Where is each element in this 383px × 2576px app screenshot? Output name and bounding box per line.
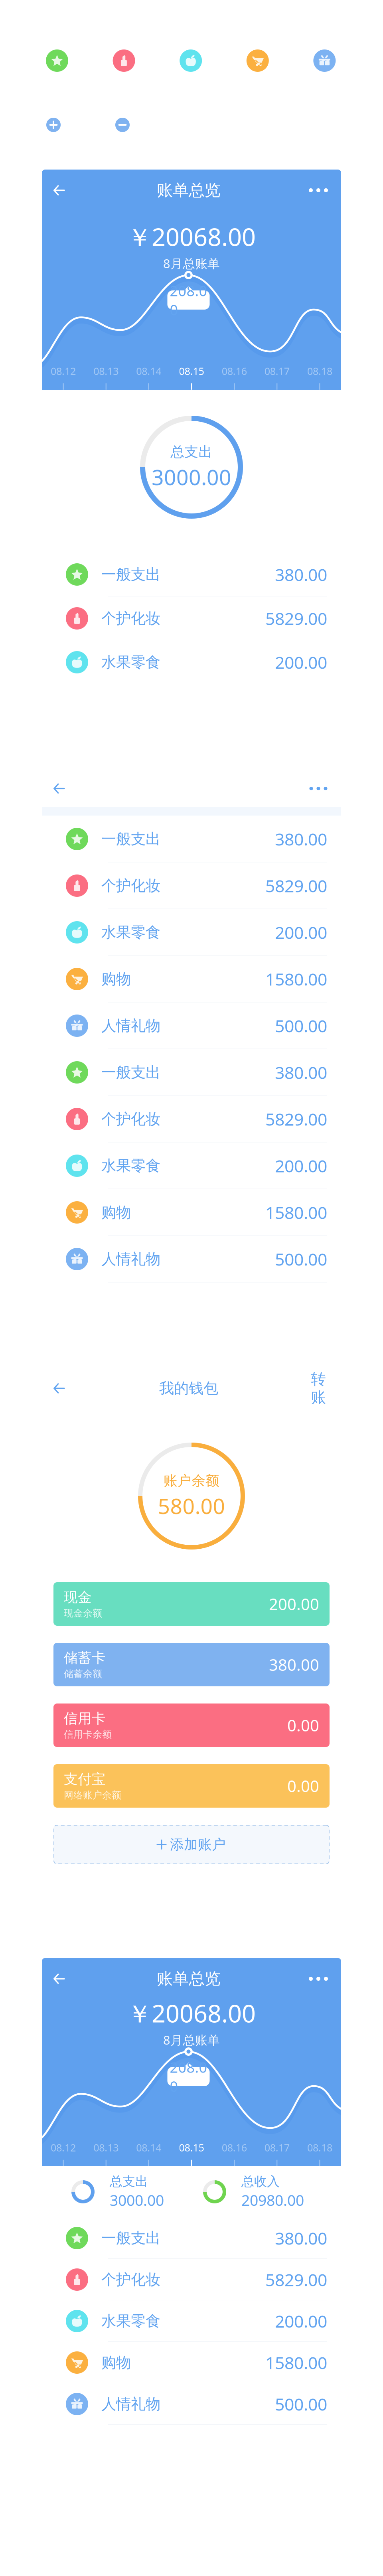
button[interactable]: 个护化妆 xyxy=(42,1096,341,1142)
staticText: 5829.00 xyxy=(265,874,327,897)
staticText: 信用卡 xyxy=(64,1710,106,1727)
button[interactable]: Back xyxy=(46,1376,72,1400)
staticText: 个护化妆 xyxy=(101,2270,160,2289)
staticText: 现金余额 xyxy=(64,1607,102,1619)
button[interactable]: 水果零食 xyxy=(42,640,341,684)
staticText: 个护化妆 xyxy=(101,609,160,628)
staticText: 储蓄卡 xyxy=(64,1649,106,1666)
staticText: 380.00 xyxy=(269,1654,319,1675)
button[interactable]: More xyxy=(305,1967,332,1991)
button[interactable]: 人情礼物 xyxy=(42,1236,341,1282)
staticText: 200.00 xyxy=(275,921,327,944)
staticText: 380.00 xyxy=(275,828,327,850)
button[interactable]: 水果零食 xyxy=(42,2300,341,2342)
button[interactable]: 信用卡 xyxy=(53,1704,330,1747)
button[interactable]: 一般支出 xyxy=(42,1049,341,1096)
staticText: 支付宝 xyxy=(64,1771,106,1788)
staticText: 添加账户 xyxy=(170,1836,226,1853)
staticText: 储蓄余额 xyxy=(64,1668,102,1680)
button[interactable]: 一般支出 xyxy=(42,2217,341,2259)
staticText: 总支出 xyxy=(171,443,212,460)
button[interactable]: 个护化妆 xyxy=(42,596,341,640)
button[interactable]: 添加账户 xyxy=(53,1825,330,1864)
staticText: 08.13 xyxy=(93,364,119,378)
button[interactable]: 个护化妆 xyxy=(42,862,341,909)
staticText: 580.00 xyxy=(158,1492,225,1520)
staticText: 1580.00 xyxy=(265,968,327,990)
button[interactable]: 现金 xyxy=(53,1582,330,1626)
staticText: 380.00 xyxy=(275,2227,327,2249)
staticText: 人情礼物 xyxy=(101,1250,160,1268)
button[interactable]: 个护化妆 xyxy=(42,2259,341,2300)
staticText: 现金 xyxy=(64,1589,92,1606)
staticText: 1580.00 xyxy=(265,1201,327,1224)
button[interactable]: 储蓄卡 xyxy=(53,1643,330,1686)
staticText: 208.00 xyxy=(170,281,207,319)
staticText: 08.15 xyxy=(179,364,204,378)
staticText: 200.00 xyxy=(269,1593,319,1615)
staticText: 08.13 xyxy=(93,2141,119,2154)
staticText: 08.16 xyxy=(222,2141,247,2154)
button[interactable]: Back xyxy=(46,777,72,800)
staticText: 08.18 xyxy=(307,2141,332,2154)
button[interactable]: 一般支出 xyxy=(42,553,341,596)
staticText: 购物 xyxy=(101,2353,131,2372)
button[interactable]: Back xyxy=(46,178,72,202)
button[interactable]: 支付宝 xyxy=(53,1764,330,1808)
button[interactable]: 购物 xyxy=(42,2342,341,2383)
staticText: 08.12 xyxy=(51,364,76,378)
staticText: 8月总账单 xyxy=(163,2032,220,2048)
staticText: 水果零食 xyxy=(101,1157,160,1175)
staticText: 08.14 xyxy=(136,364,161,378)
staticText: 个护化妆 xyxy=(101,877,160,895)
staticText: 账单总览 xyxy=(157,180,221,200)
staticText: 380.00 xyxy=(275,563,327,586)
staticText: 个护化妆 xyxy=(101,1110,160,1128)
staticText: 1580.00 xyxy=(265,2351,327,2374)
staticText: 信用卡余额 xyxy=(64,1729,112,1740)
staticText: 一般支出 xyxy=(101,1063,160,1082)
staticText: 08.18 xyxy=(307,364,332,378)
button[interactable]: 人情礼物 xyxy=(42,1002,341,1049)
staticText: 水果零食 xyxy=(101,653,160,671)
staticText: 500.00 xyxy=(275,2393,327,2415)
staticText: 5829.00 xyxy=(265,1108,327,1130)
staticText: 5829.00 xyxy=(265,607,327,630)
button[interactable]: 水果零食 xyxy=(42,1142,341,1189)
staticText: 0.00 xyxy=(287,1775,319,1796)
staticText: 08.17 xyxy=(264,364,290,378)
button[interactable]: 人情礼物 xyxy=(42,2383,341,2425)
staticText: 500.00 xyxy=(275,1014,327,1037)
staticText: 购物 xyxy=(101,970,131,988)
staticText: 一般支出 xyxy=(101,830,160,848)
button[interactable]: 购物 xyxy=(42,956,341,1002)
staticText: 水果零食 xyxy=(101,2312,160,2330)
staticText: 人情礼物 xyxy=(101,2395,160,2413)
staticText: 200.00 xyxy=(275,1154,327,1177)
button[interactable]: 购物 xyxy=(42,1189,341,1236)
button[interactable]: Remove xyxy=(115,118,130,132)
staticText: 380.00 xyxy=(275,1061,327,1084)
staticText: 08.15 xyxy=(179,2141,204,2154)
button[interactable]: More xyxy=(305,777,332,800)
staticText: 20980.00 xyxy=(241,2190,304,2210)
staticText: 5829.00 xyxy=(265,2268,327,2291)
staticText: 200.00 xyxy=(275,651,327,674)
button[interactable]: 转账 xyxy=(305,1376,332,1400)
staticText: 一般支出 xyxy=(101,565,160,584)
staticText: 账户余额 xyxy=(164,1472,219,1489)
staticText: 我的钱包 xyxy=(159,1379,218,1398)
staticText: 08.12 xyxy=(51,2141,76,2154)
button[interactable]: 水果零食 xyxy=(42,909,341,956)
staticText: 8月总账单 xyxy=(163,255,220,271)
staticText: ￥20068.00 xyxy=(127,220,256,253)
staticText: ￥20068.00 xyxy=(127,1997,256,2029)
button[interactable]: Add xyxy=(46,118,61,132)
button[interactable]: More xyxy=(305,178,332,202)
staticText: 转账 xyxy=(311,1370,326,1407)
staticText: 208.00 xyxy=(170,2058,207,2096)
button[interactable]: Back xyxy=(46,1967,72,1991)
staticText: 购物 xyxy=(101,1203,131,1222)
button[interactable]: 一般支出 xyxy=(42,816,341,862)
staticText: 人情礼物 xyxy=(101,1017,160,1035)
